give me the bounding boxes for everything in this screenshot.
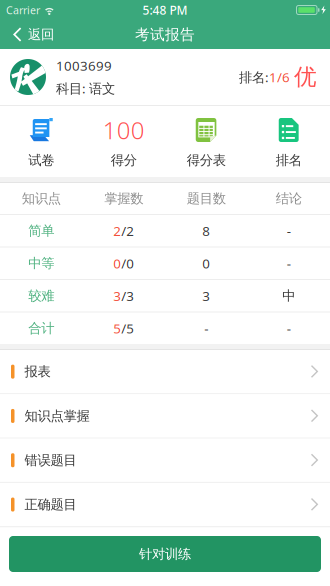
staticText: 针对训练: [139, 546, 191, 562]
staticText: 掌握数: [104, 190, 143, 207]
button[interactable]: 返回: [0, 20, 64, 49]
button[interactable]: 100: [82, 106, 165, 177]
staticText: Carrier: [6, 3, 40, 17]
staticText: 中: [282, 288, 295, 304]
staticText: 1/6: [269, 68, 290, 86]
staticText: 8: [202, 222, 210, 240]
staticText: 简单: [28, 223, 54, 239]
staticText: 正确题目: [24, 496, 76, 513]
staticText: 结论: [276, 190, 302, 207]
button[interactable]: 知识点掌握: [0, 394, 330, 438]
staticText: 题目数: [187, 190, 226, 207]
staticText: 中等: [28, 255, 54, 271]
staticText: -: [287, 319, 291, 337]
staticText: -: [287, 222, 291, 240]
button[interactable]: 排名: [247, 106, 330, 177]
staticText: 科目: 语文: [56, 79, 115, 97]
button[interactable]: 报表: [0, 350, 330, 393]
staticText: 试卷: [28, 152, 54, 168]
staticText: 知识点掌握: [24, 408, 89, 424]
staticText: 错误题目: [24, 452, 76, 468]
staticText: /5: [121, 319, 134, 337]
staticText: 报表: [24, 363, 50, 380]
staticText: 5:48 PM: [142, 2, 187, 18]
staticText: 得分: [111, 152, 137, 168]
staticText: 得分表: [187, 152, 226, 168]
staticText: 100: [103, 114, 145, 146]
staticText: 1003699: [56, 57, 112, 74]
staticText: 3: [113, 287, 121, 305]
staticText: -: [287, 254, 291, 272]
staticText: 3: [202, 287, 210, 305]
button[interactable]: 得分表: [165, 106, 247, 177]
button[interactable]: 错误题目: [0, 439, 330, 482]
staticText: 5: [113, 319, 121, 337]
staticText: 知识点: [22, 190, 61, 207]
staticText: 0: [202, 254, 210, 272]
staticText: 返回: [28, 26, 54, 43]
staticText: 较难: [28, 288, 54, 304]
staticText: 优: [294, 63, 317, 91]
staticText: /2: [121, 222, 134, 240]
staticText: -: [204, 319, 208, 337]
staticText: /0: [121, 254, 134, 272]
staticText: 排名:: [239, 68, 269, 86]
button[interactable]: 针对训练: [9, 536, 321, 572]
staticText: 2: [113, 222, 121, 240]
button[interactable]: 正确题目: [0, 483, 330, 526]
staticText: /3: [121, 287, 134, 305]
staticText: 合计: [28, 320, 54, 336]
staticText: 考试报告: [135, 25, 195, 43]
staticText: 0: [113, 254, 121, 272]
button[interactable]: 试卷: [0, 106, 82, 177]
staticText: 排名: [276, 152, 302, 168]
